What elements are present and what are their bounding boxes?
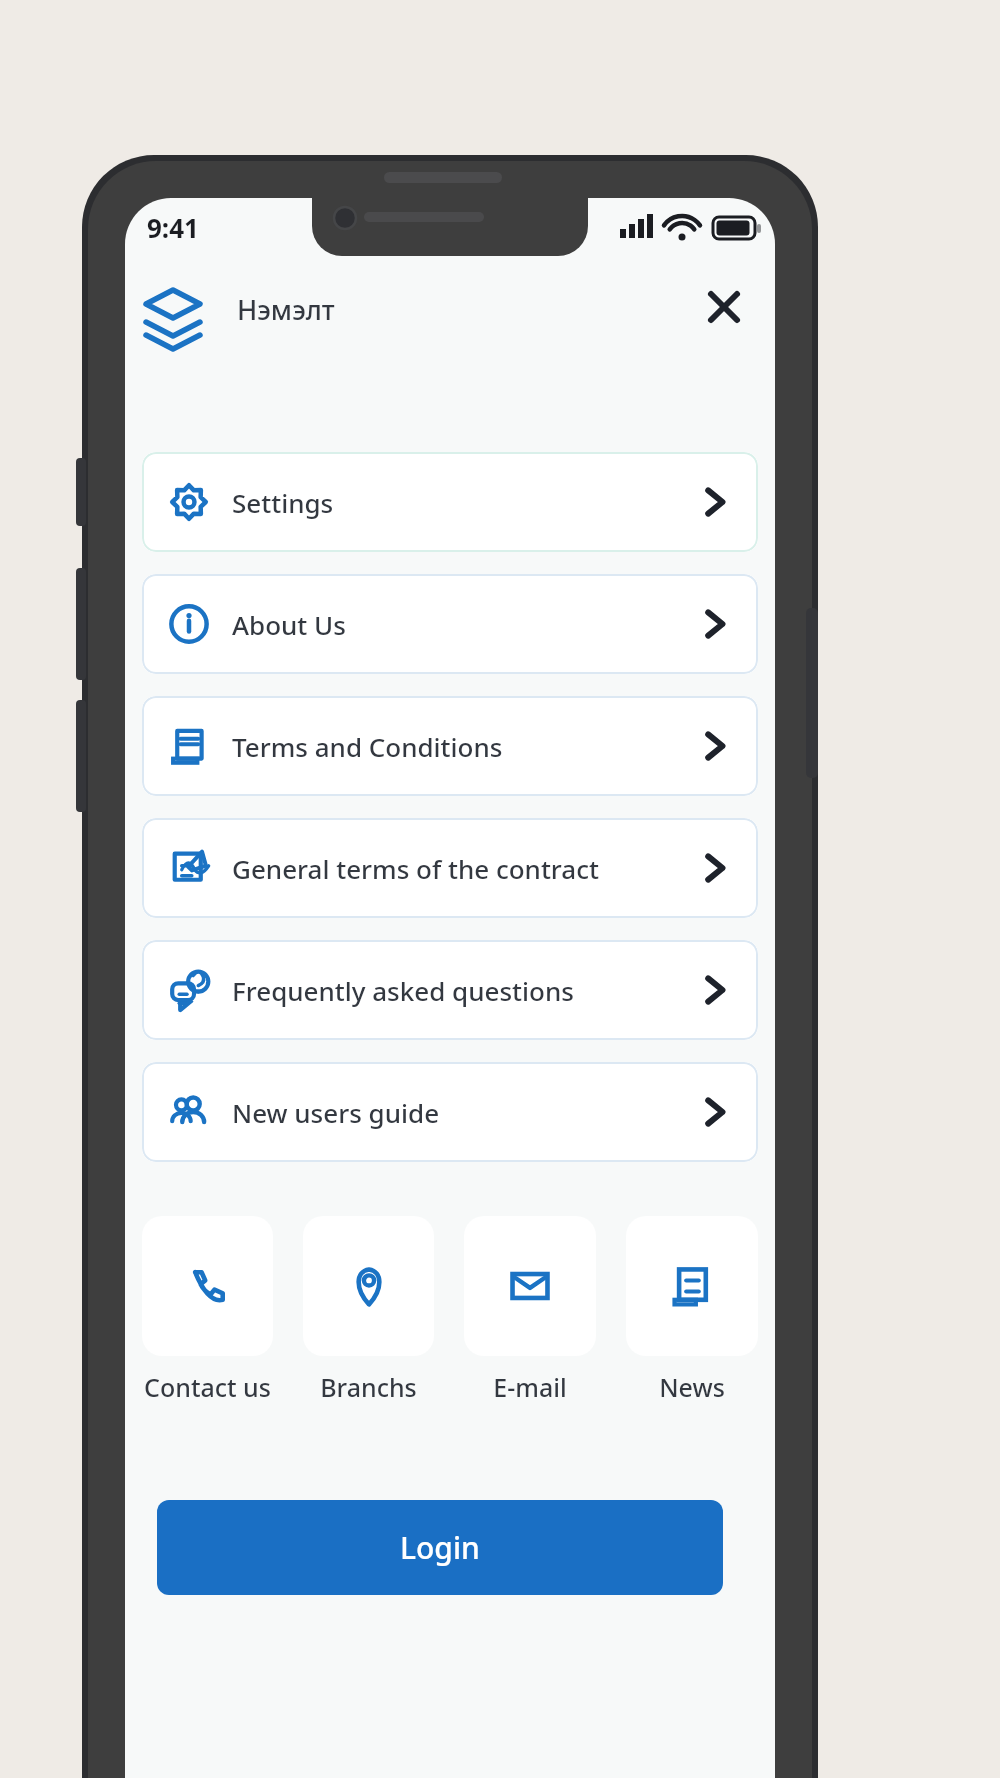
staticText: General terms of the contract	[232, 851, 599, 886]
button[interactable]: Branchs	[303, 1216, 434, 1404]
staticText: News	[659, 1370, 725, 1404]
staticText: Login	[400, 1527, 480, 1568]
staticText: Terms and Conditions	[232, 729, 503, 764]
staticText: Contact us	[144, 1370, 271, 1404]
button[interactable]: New users guide	[142, 1062, 758, 1162]
staticText: About Us	[232, 607, 346, 642]
button[interactable]: Close	[695, 278, 753, 336]
button[interactable]: Terms and Conditions	[142, 696, 758, 796]
staticText: 9:41	[147, 210, 199, 245]
button[interactable]: Frequently asked questions	[142, 940, 758, 1040]
button[interactable]: Layers	[143, 276, 203, 336]
button[interactable]: Login	[157, 1500, 723, 1595]
staticText: Settings	[232, 485, 334, 520]
button[interactable]: News	[626, 1216, 758, 1404]
button[interactable]: About Us	[142, 574, 758, 674]
button[interactable]: General terms of the contract	[142, 818, 758, 918]
button[interactable]: Settings	[142, 452, 758, 552]
staticText: Branchs	[320, 1370, 417, 1404]
staticText: Frequently asked questions	[232, 973, 574, 1008]
button[interactable]: E-mail	[464, 1216, 596, 1404]
button[interactable]: Contact us	[142, 1216, 273, 1404]
staticText: Нэмэлт	[237, 291, 335, 328]
staticText: New users guide	[232, 1095, 440, 1130]
staticText: E-mail	[493, 1370, 567, 1404]
